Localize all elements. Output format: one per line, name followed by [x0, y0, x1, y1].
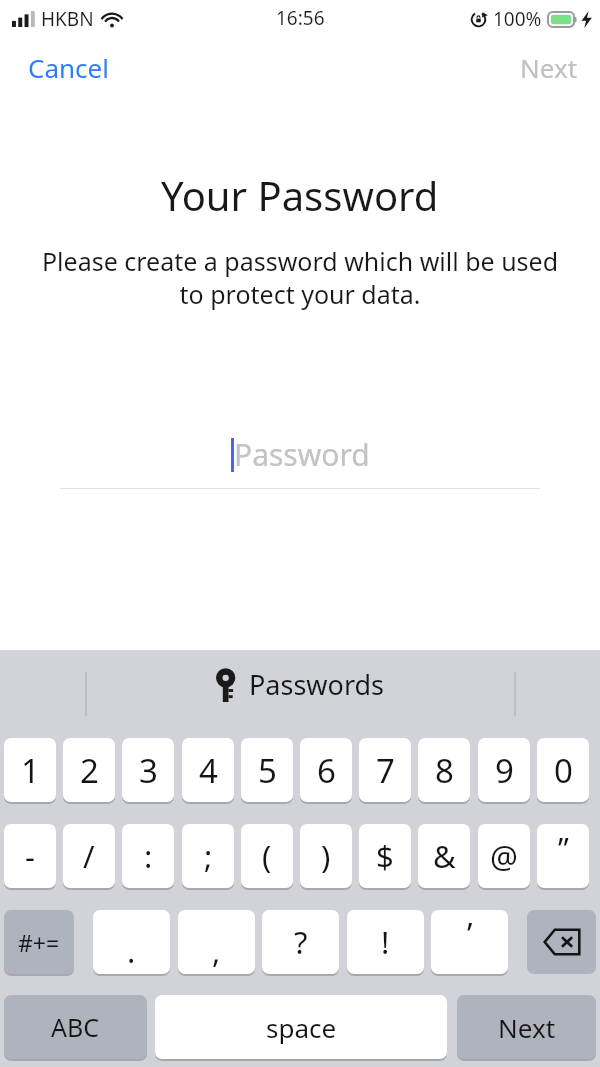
button[interactable]: $ [359, 824, 411, 888]
staticText: ? [294, 921, 308, 963]
button[interactable]: / [63, 824, 115, 888]
staticText: 7 [376, 748, 395, 793]
staticText: ” [558, 828, 569, 869]
button[interactable]: space [155, 995, 447, 1059]
staticText: 4 [199, 748, 218, 793]
staticText: 6 [317, 748, 336, 793]
button[interactable]: Cancel [0, 42, 137, 93]
button[interactable]: @ [478, 824, 530, 888]
staticText: Cancel [28, 50, 109, 85]
button[interactable]: Next [498, 42, 600, 93]
button[interactable]: : [122, 824, 174, 888]
staticText: 9 [495, 748, 514, 793]
staticText: : [144, 835, 153, 877]
button[interactable]: 5 [241, 738, 293, 802]
staticText: Passwords [249, 666, 385, 703]
button[interactable]: 2 [63, 738, 115, 802]
staticText: HKBN [41, 6, 94, 32]
button[interactable]: . [93, 910, 170, 974]
staticText: 5 [258, 748, 277, 793]
button[interactable]: 1 [4, 738, 56, 802]
staticText: ) [321, 835, 331, 877]
button[interactable]: ’ [431, 910, 508, 974]
staticText: Please create a password which will be u… [32, 244, 568, 311]
button[interactable]: Password [60, 419, 540, 489]
staticText: 16:56 [276, 5, 325, 31]
button[interactable]: Backspace [527, 910, 596, 974]
button[interactable]: ? [262, 910, 339, 974]
staticText: ’ [467, 912, 473, 954]
button[interactable]: Next [457, 995, 596, 1059]
staticText: Your Password [161, 168, 439, 222]
button[interactable]: 6 [300, 738, 352, 802]
staticText: Password [234, 434, 370, 475]
button[interactable]: ; [182, 824, 234, 888]
button[interactable]: 0 [537, 738, 589, 802]
staticText: Next [520, 50, 578, 85]
button[interactable]: ! [347, 910, 424, 974]
button[interactable]: Passwords [216, 666, 385, 703]
staticText: , [212, 930, 221, 972]
button[interactable]: 9 [478, 738, 530, 802]
staticText: - [25, 835, 35, 877]
button[interactable]: & [418, 824, 470, 888]
staticText: & [433, 835, 456, 877]
staticText: 100% [493, 6, 542, 32]
staticText: @ [490, 835, 518, 877]
staticText: Next [498, 1010, 556, 1045]
button[interactable]: 4 [182, 738, 234, 802]
staticText: ABC [51, 1010, 100, 1044]
button[interactable]: ” [537, 824, 589, 888]
staticText: $ [376, 835, 394, 877]
staticText: 8 [435, 748, 454, 793]
button[interactable]: - [4, 824, 56, 888]
staticText: 2 [80, 748, 99, 793]
staticText: . [127, 930, 136, 972]
button[interactable]: 8 [418, 738, 470, 802]
staticText: #+= [18, 927, 60, 958]
button[interactable]: ABC [4, 995, 147, 1059]
button[interactable]: 7 [359, 738, 411, 802]
staticText: ! [381, 921, 390, 963]
button[interactable]: ( [241, 824, 293, 888]
button[interactable]: ) [300, 824, 352, 888]
button[interactable]: , [178, 910, 255, 974]
staticText: ( [262, 835, 272, 877]
staticText: / [83, 835, 95, 877]
staticText: 3 [139, 748, 158, 793]
staticText: 0 [554, 748, 573, 793]
button[interactable]: #+= [4, 910, 74, 974]
staticText: ; [204, 835, 213, 877]
staticText: space [266, 1010, 337, 1045]
button[interactable]: 3 [122, 738, 174, 802]
staticText: 1 [21, 748, 40, 793]
